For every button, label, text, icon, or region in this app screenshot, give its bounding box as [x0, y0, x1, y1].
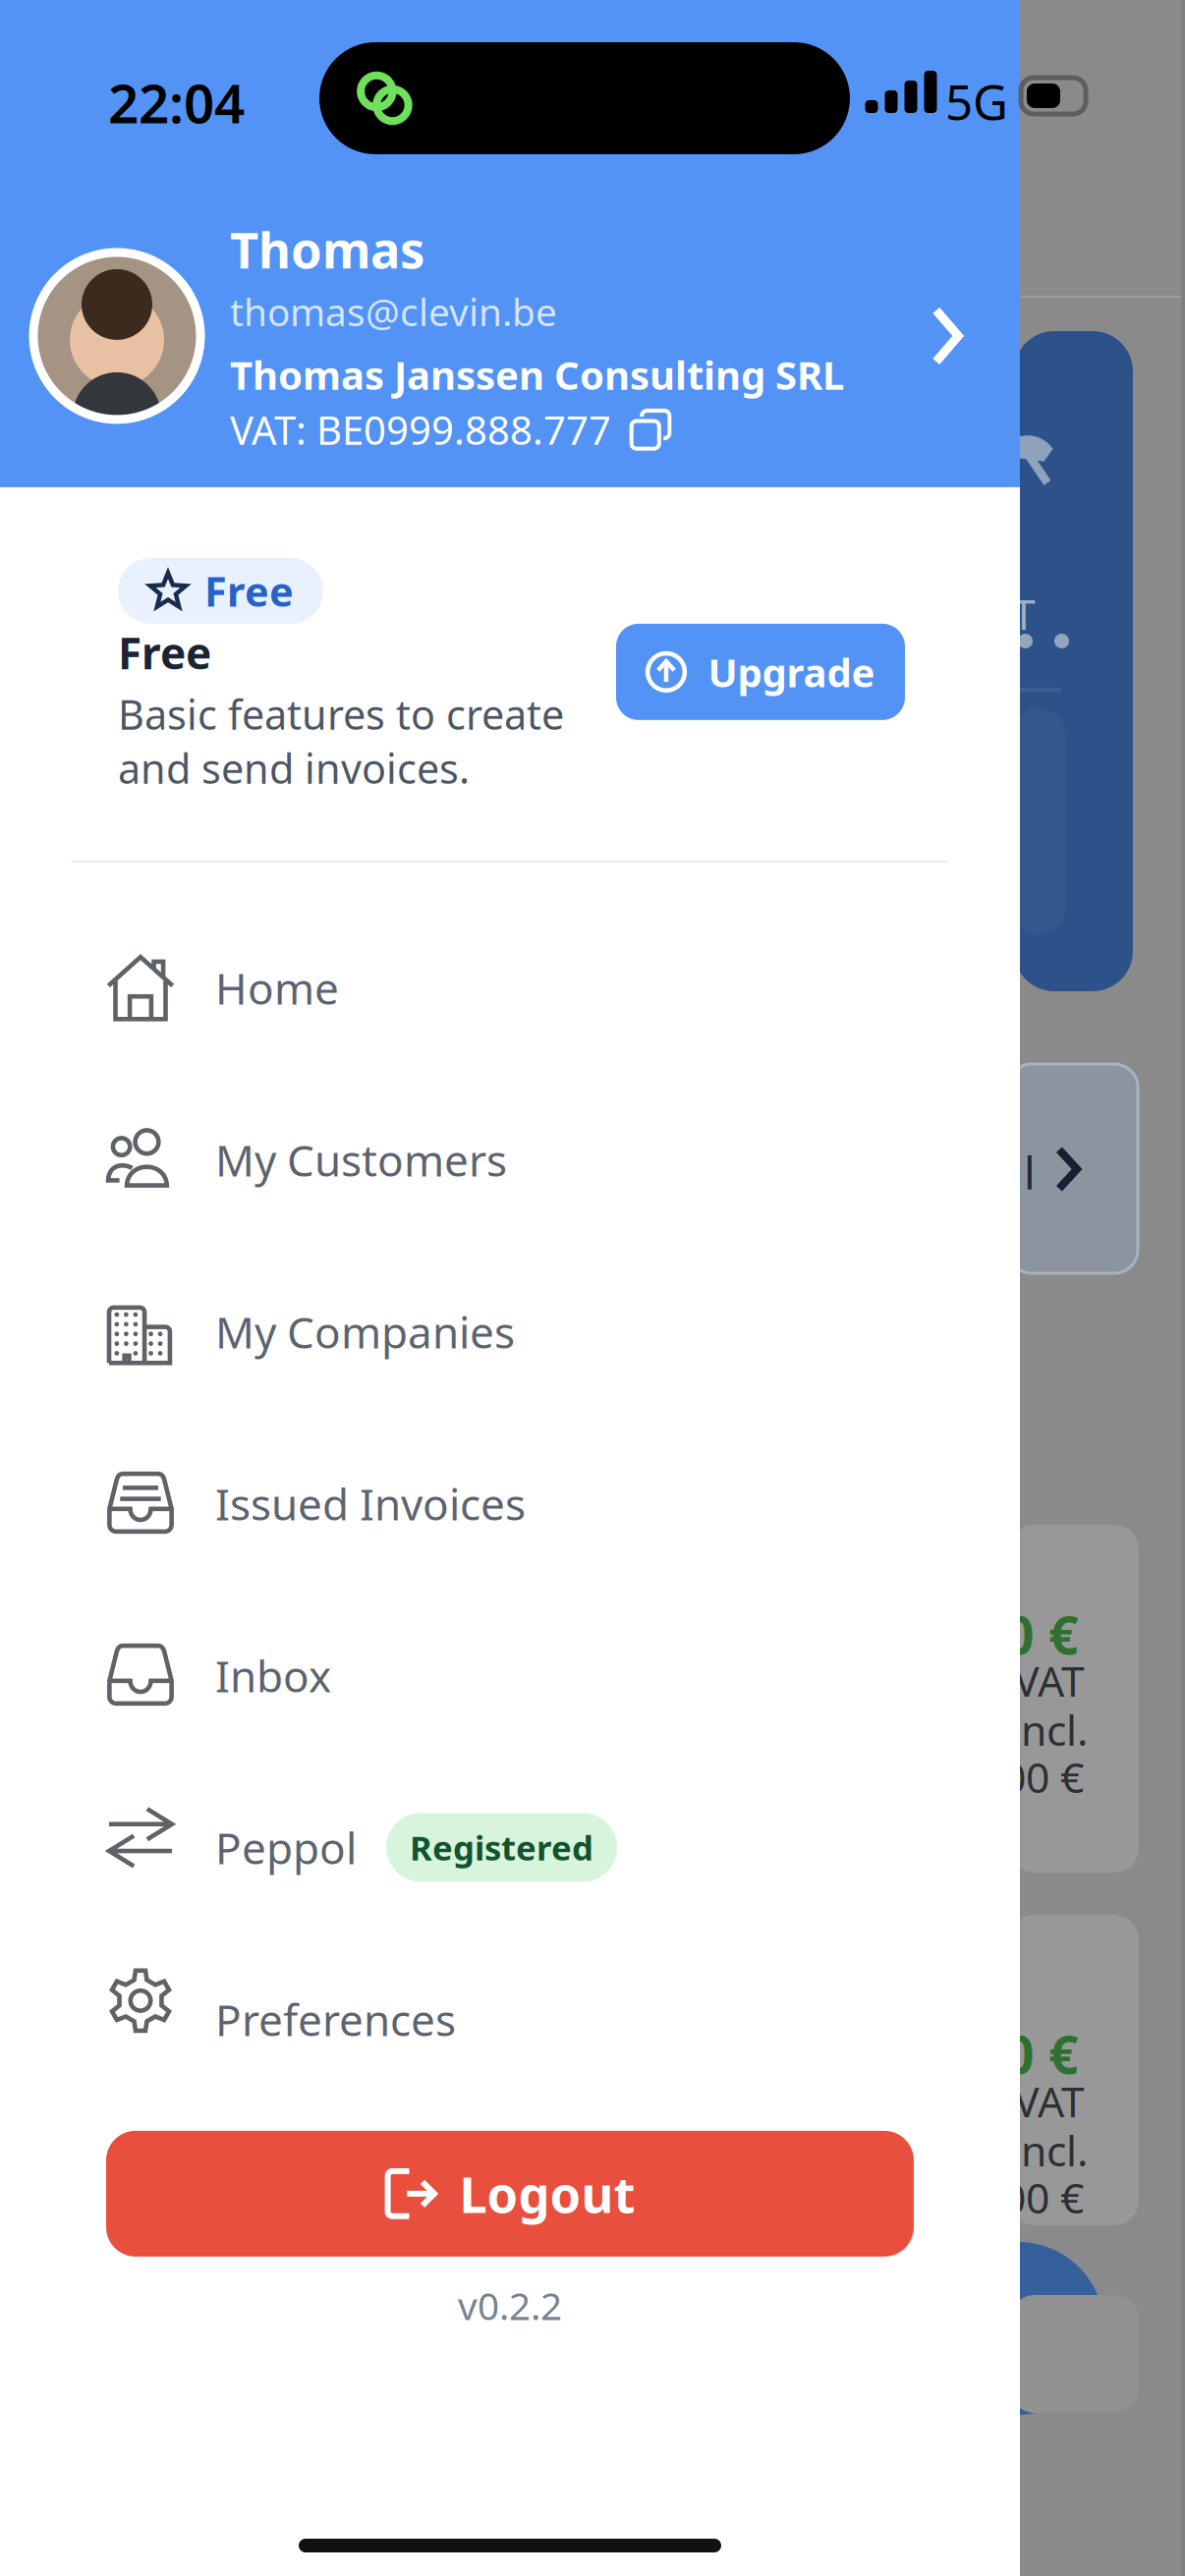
staticText: 22:04 — [108, 67, 245, 138]
staticText: VAT: BE0999.888.777 — [230, 404, 611, 456]
button[interactable]: Inbox — [0, 1590, 1020, 1761]
staticText: incl. — [1010, 2122, 1088, 2178]
button[interactable]: Upgrade — [616, 624, 905, 720]
staticText: 00 € — [1002, 2169, 1084, 2225]
staticText: Home — [215, 959, 339, 1016]
button[interactable]: Peppol — [0, 1761, 1020, 1933]
button[interactable]: Thomas — [0, 216, 1020, 456]
staticText: Basic features to create and send invoic… — [118, 687, 564, 795]
staticText: T — [1012, 586, 1036, 641]
staticText: ıl — [1012, 1143, 1036, 1202]
button[interactable]: Logout — [0, 2131, 1020, 2257]
staticText: Peppol — [215, 1819, 357, 1876]
staticText: 0 € — [1004, 1599, 1079, 1669]
staticText: Logout — [459, 2161, 635, 2227]
staticText: thomas@clevin.be — [230, 286, 557, 337]
staticText: Registered — [410, 1825, 593, 1870]
button[interactable]: My Companies — [0, 1246, 1020, 1418]
staticText: Free — [118, 624, 211, 681]
staticText: 0 € — [1004, 2019, 1079, 2089]
staticText: incl. — [1010, 1702, 1088, 1757]
staticText: Thomas Janssen Consulting SRL — [230, 348, 844, 401]
staticText: 5G — [945, 69, 1008, 133]
staticText: 00 € — [1002, 1749, 1084, 1804]
staticText: Thomas — [230, 216, 424, 282]
staticText: My Customers — [215, 1131, 507, 1188]
staticText: v0.2.2 — [458, 2280, 562, 2331]
staticText: Issued Invoices — [215, 1475, 526, 1532]
button[interactable]: Issued Invoices — [0, 1418, 1020, 1590]
staticText: VAT — [1014, 1652, 1085, 1708]
button[interactable]: Preferences — [0, 1933, 1020, 2105]
staticText: My Companies — [215, 1303, 515, 1360]
staticText: Preferences — [215, 1991, 456, 2048]
staticText: Upgrade — [708, 646, 875, 698]
button[interactable]: My Customers — [0, 1074, 1020, 1246]
button[interactable]: Home — [0, 902, 1020, 1074]
staticText: Inbox — [215, 1647, 331, 1704]
staticText: Free — [204, 564, 294, 618]
staticText: VAT — [1014, 2073, 1085, 2129]
